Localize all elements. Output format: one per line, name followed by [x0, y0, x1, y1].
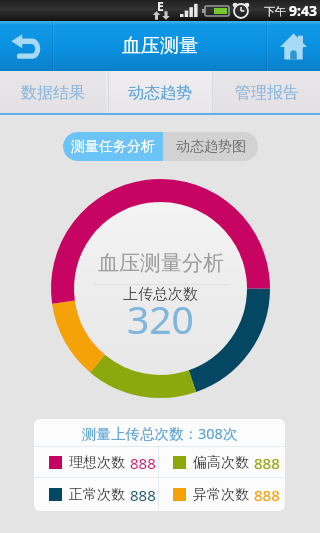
- staticText: 异常次数: [193, 486, 249, 504]
- button[interactable]: 动态趋势图: [163, 132, 258, 161]
- staticText: 理想次数: [69, 454, 125, 472]
- staticText: 上传总次数: [123, 285, 198, 304]
- button[interactable]: 异常次数: [173, 479, 285, 510]
- staticText: 动态趋势: [128, 83, 192, 103]
- staticText: 下午: [264, 3, 289, 18]
- staticText: 测量上传总次数：308次: [82, 423, 238, 443]
- button[interactable]: 管理报告: [213, 71, 320, 115]
- staticText: 888: [254, 485, 280, 505]
- button[interactable]: 数据结果: [0, 71, 106, 115]
- staticText: E: [157, 0, 164, 14]
- button[interactable]: Home: [267, 21, 320, 71]
- button[interactable]: 正常次数: [49, 479, 158, 510]
- staticText: 正常次数: [69, 486, 125, 504]
- staticText: 888: [254, 453, 280, 473]
- button[interactable]: 测量任务分析: [63, 132, 163, 161]
- staticText: 管理报告: [235, 83, 299, 103]
- button[interactable]: 偏高次数: [173, 447, 285, 478]
- staticText: 888: [130, 485, 156, 505]
- staticText: 9:43: [289, 1, 317, 20]
- staticText: 数据结果: [21, 83, 85, 103]
- staticText: 测量任务分析: [71, 138, 155, 156]
- staticText: 动态趋势图: [176, 138, 246, 156]
- staticText: 320: [127, 292, 194, 345]
- button[interactable]: 动态趋势: [106, 71, 213, 115]
- staticText: 血压测量分析: [98, 250, 224, 276]
- staticText: 888: [130, 453, 156, 473]
- button[interactable]: Back: [0, 21, 53, 71]
- staticText: 血压测量: [122, 34, 198, 58]
- button[interactable]: 理想次数: [49, 447, 158, 478]
- staticText: 偏高次数: [193, 454, 249, 472]
